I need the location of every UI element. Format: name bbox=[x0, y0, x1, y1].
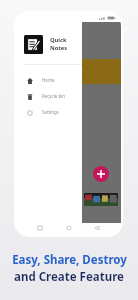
button[interactable]: Recents bbox=[35, 223, 45, 233]
staticText: Quick Notes bbox=[50, 36, 82, 52]
staticText: Recycle bin bbox=[42, 93, 65, 99]
button[interactable]: Add note bbox=[93, 166, 109, 182]
button[interactable]: Quick Notes bbox=[16, 29, 82, 59]
button[interactable]: Back bbox=[92, 223, 102, 233]
staticText: Home bbox=[42, 77, 55, 83]
button[interactable]: Settings bbox=[16, 104, 82, 120]
staticText: Settings bbox=[42, 109, 59, 115]
staticText: Easy, Share, Destroy bbox=[12, 252, 127, 268]
button[interactable] bbox=[84, 193, 118, 206]
button[interactable]: Home bbox=[64, 223, 74, 233]
button[interactable]: Home bbox=[16, 72, 82, 88]
staticText: and Create Feature bbox=[14, 269, 124, 285]
button[interactable]: Recycle bin bbox=[16, 88, 82, 104]
